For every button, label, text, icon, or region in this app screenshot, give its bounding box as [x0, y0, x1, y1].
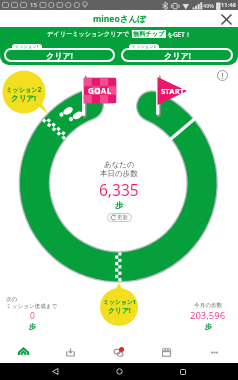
button[interactable]: Home — [0, 342, 47, 363]
staticText: ミッション2 — [6, 85, 42, 93]
staticText: mineoさんぽ — [93, 13, 146, 25]
button[interactable]: Recents — [174, 363, 192, 380]
staticText: クリア! — [11, 93, 37, 103]
staticText: 歩 — [29, 322, 36, 331]
staticText: 今月の歩数 — [194, 302, 223, 309]
button[interactable]: Saved — [47, 342, 94, 363]
staticText: クリア! — [108, 306, 131, 315]
staticText: をGET！ — [167, 30, 191, 38]
staticText: 無料チップ — [133, 30, 165, 38]
staticText: 49% — [203, 2, 214, 9]
staticText: GOAL — [88, 85, 112, 96]
staticText: 203,596 — [190, 309, 226, 322]
staticText: デイリーミッションクリアで — [47, 30, 130, 38]
button[interactable]: More — [190, 342, 238, 363]
staticText: 15 — [30, 1, 37, 9]
staticText: 歩 — [115, 200, 123, 210]
button[interactable]: Home — [110, 363, 128, 380]
button[interactable]: Shop — [142, 342, 190, 363]
staticText: ミッション達成まで — [6, 303, 58, 310]
staticText: ミッション2 — [132, 44, 156, 50]
staticText: START — [161, 86, 185, 96]
staticText: 更新 — [117, 214, 128, 221]
button[interactable]: クリア! — [121, 48, 233, 62]
button[interactable]: クリア! — [4, 48, 115, 62]
button[interactable]: Close — [219, 12, 233, 26]
staticText: 歩 — [205, 322, 212, 331]
button[interactable]: Back — [46, 363, 64, 380]
staticText: 0 — [30, 310, 35, 322]
staticText: 11:48 — [221, 1, 236, 9]
staticText: クリア! — [164, 50, 191, 61]
staticText: あなたの — [104, 160, 135, 169]
staticText: ミッション1 — [15, 44, 39, 50]
button[interactable]: Information — [214, 67, 231, 84]
staticText: ミッション1 — [103, 298, 136, 306]
button[interactable]: 更新 — [107, 213, 132, 222]
staticText: 本日の歩数 — [100, 169, 138, 178]
button[interactable]: Messages — [94, 342, 142, 363]
staticText: 次の — [6, 296, 18, 303]
staticText: クリア! — [46, 50, 73, 61]
staticText: 6,335 — [99, 179, 139, 200]
